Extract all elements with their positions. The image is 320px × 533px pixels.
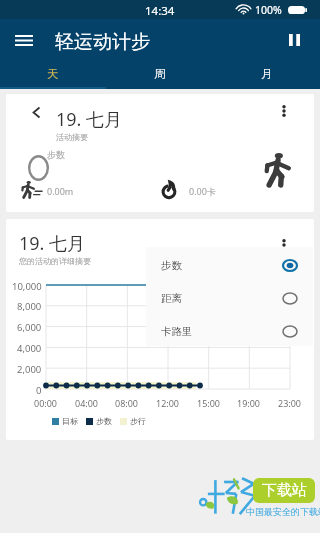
- button[interactable]: More options: [272, 97, 296, 125]
- staticText: 0.00m: [47, 185, 74, 197]
- staticText: 卡路里: [161, 325, 193, 338]
- button[interactable]: Menu: [6, 19, 42, 61]
- staticText: 15:00: [197, 397, 221, 408]
- staticText: 您的活动的详细摘要: [19, 256, 91, 266]
- staticText: 100%: [255, 3, 282, 17]
- staticText: 4,000: [17, 342, 42, 353]
- staticText: 月: [261, 67, 273, 81]
- staticText: 活动摘要: [56, 132, 88, 142]
- button[interactable]: 卡路里: [146, 317, 313, 346]
- staticText: 23:00: [278, 397, 302, 408]
- button[interactable]: Pause: [276, 19, 312, 61]
- staticText: 08:00: [115, 397, 139, 408]
- staticText: 轻运动计步: [55, 30, 150, 54]
- staticText: 0: [36, 384, 42, 395]
- staticText: 8,000: [17, 300, 42, 311]
- staticText: 00:00: [34, 397, 58, 408]
- staticText: 19. 七月: [19, 231, 86, 256]
- staticText: 步数: [47, 149, 65, 160]
- staticText: 周: [154, 67, 166, 81]
- staticText: 步行: [130, 416, 146, 426]
- button[interactable]: 周: [106, 61, 213, 87]
- staticText: 14:34: [145, 3, 175, 19]
- staticText: 12:00: [156, 397, 180, 408]
- staticText: 天: [47, 67, 59, 81]
- staticText: 19. 七月: [56, 107, 123, 132]
- staticText: 步数: [161, 259, 182, 272]
- staticText: 中国最安全的下载站: [246, 506, 320, 517]
- button[interactable]: 距离: [146, 284, 313, 313]
- staticText: 0.00卡: [189, 185, 216, 197]
- button[interactable]: 月: [213, 61, 320, 87]
- staticText: 04:00: [75, 397, 99, 408]
- button[interactable]: Chart options: [272, 231, 296, 259]
- staticText: 步数: [96, 416, 112, 426]
- staticText: 19:00: [237, 397, 261, 408]
- staticText: 目标: [62, 416, 78, 426]
- button[interactable]: 步数: [146, 251, 313, 280]
- staticText: 距离: [161, 292, 182, 305]
- staticText: 10,000: [12, 280, 42, 291]
- staticText: 下载站: [262, 481, 307, 500]
- staticText: 6,000: [17, 321, 42, 332]
- staticText: 2,000: [17, 363, 42, 374]
- button[interactable]: 天: [0, 61, 106, 87]
- button[interactable]: Back: [23, 99, 49, 125]
